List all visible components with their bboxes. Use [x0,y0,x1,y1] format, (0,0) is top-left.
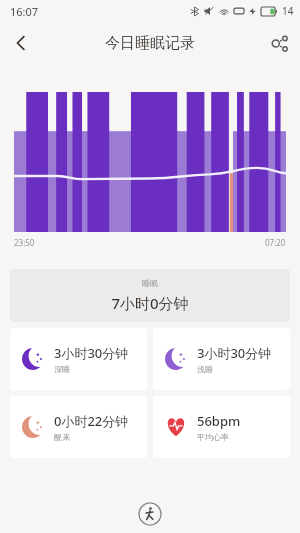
staticText: 56bpm [197,412,241,430]
staticText: 今日睡眠记录 [105,34,195,53]
staticText: 浅睡 [197,364,213,374]
staticText: 23:50 [14,237,35,248]
button[interactable]: 0小时22分钟 [10,396,147,458]
staticText: 睡眠 [142,278,158,288]
button[interactable]: 3小时30分钟 [153,328,290,390]
button[interactable]: Back [0,22,42,64]
staticText: 醒来 [54,432,70,442]
staticText: 平均心率 [197,432,229,442]
staticText: 0小时22分钟 [54,412,129,430]
button[interactable]: 56bpm [153,396,290,458]
staticText: 深睡 [54,364,70,374]
button[interactable]: Activity [138,502,162,526]
button[interactable]: Share [258,22,300,64]
staticText: 14 [282,4,294,18]
staticText: 07:20 [265,237,286,248]
staticText: 3小时30分钟 [197,344,272,362]
staticText: 3小时30分钟 [54,344,129,362]
button[interactable]: 睡眠 [10,269,290,322]
staticText: 16:07 [10,4,39,19]
staticText: 7小时0分钟 [111,293,189,313]
button[interactable]: 3小时30分钟 [10,328,147,390]
